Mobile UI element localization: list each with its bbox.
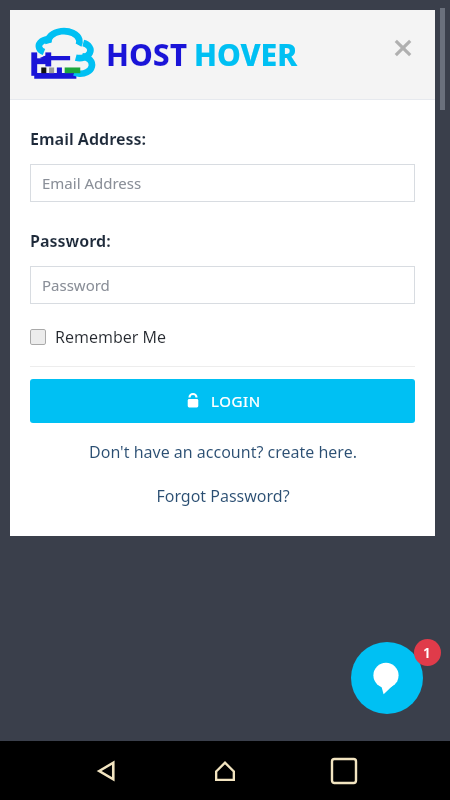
staticText: Password (42, 275, 110, 295)
button[interactable]: Home (201, 747, 249, 795)
button[interactable]: Don't have an account? create here. (30, 441, 415, 463)
staticText: HOVER (194, 34, 298, 75)
button[interactable]: Recent apps (320, 747, 368, 795)
staticText: 1 (423, 643, 432, 662)
staticText: Password: (30, 230, 111, 252)
staticText: LOGIN (211, 391, 261, 411)
button[interactable]: Password (30, 266, 415, 304)
button[interactable]: LOGIN (30, 379, 415, 423)
button[interactable]: Chat (351, 642, 423, 714)
button[interactable]: Forgot Password? (30, 485, 415, 507)
button[interactable]: Email Address (30, 164, 415, 202)
staticText: HOST (106, 34, 188, 75)
staticText: Remember Me (55, 326, 167, 348)
staticText: Forgot Password? (156, 485, 290, 507)
staticText: Email Address: (30, 128, 147, 150)
button[interactable]: Back (82, 747, 130, 795)
button[interactable]: Remember Me (30, 326, 167, 348)
button[interactable]: Close (385, 30, 421, 66)
staticText: Email Address (42, 173, 142, 193)
staticText: Don't have an account? create here. (89, 441, 357, 463)
